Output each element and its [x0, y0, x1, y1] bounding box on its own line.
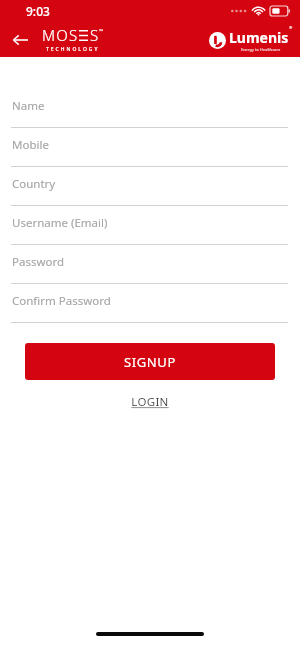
staticText: LOGIN	[131, 394, 169, 410]
staticText: Mobile	[12, 137, 49, 153]
staticText: Name	[12, 98, 45, 114]
button[interactable]: SIGNUP	[25, 343, 275, 380]
staticText: Energy to Healthcare	[241, 47, 281, 52]
button[interactable]: Back	[8, 28, 32, 52]
button[interactable]: Password	[0, 245, 300, 284]
button[interactable]: Country	[0, 167, 300, 206]
button[interactable]: Confirm Password	[0, 284, 300, 323]
button[interactable]: Username (Email)	[0, 206, 300, 245]
staticText: S	[90, 25, 99, 45]
staticText: ™	[99, 28, 103, 35]
staticText: Confirm Password	[12, 293, 111, 309]
staticText: Lumenis	[229, 28, 289, 47]
staticText: Password	[12, 254, 65, 270]
staticText: Country	[12, 176, 56, 192]
button[interactable]: Mobile	[0, 128, 300, 167]
staticText: 9:03	[26, 3, 50, 19]
button[interactable]: Name	[0, 89, 300, 128]
button[interactable]: LOGIN	[121, 390, 179, 414]
staticText: SIGNUP	[124, 353, 176, 371]
staticText: Username (Email)	[12, 215, 108, 231]
staticText: ®	[289, 25, 293, 30]
staticText: MOS	[42, 25, 79, 45]
staticText: TECHNOLOGY	[46, 46, 100, 53]
